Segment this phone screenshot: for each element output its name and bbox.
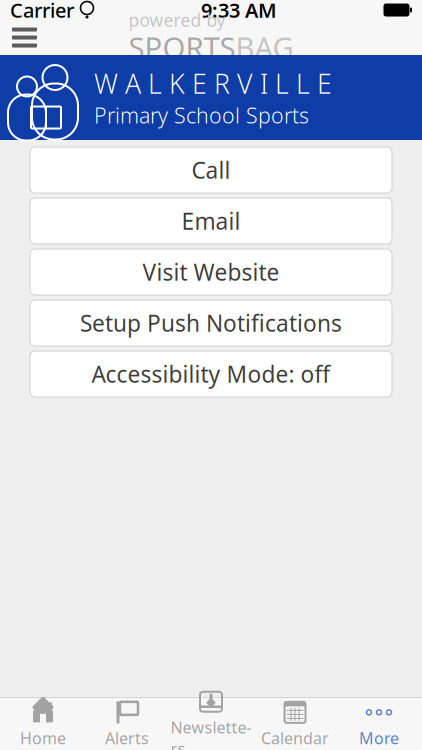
button[interactable]: Alerts xyxy=(85,698,169,750)
staticText: Email xyxy=(181,206,240,236)
staticText: More xyxy=(359,727,399,749)
button[interactable]: More xyxy=(337,698,421,750)
staticText: SPORTS xyxy=(128,27,235,66)
staticText: Visit Website xyxy=(142,257,279,287)
button[interactable]: Accessibility Mode: off xyxy=(30,351,392,397)
button[interactable]: Home xyxy=(1,698,85,750)
staticText: Calendar xyxy=(261,727,329,749)
button[interactable]: Call xyxy=(30,147,392,193)
button[interactable]: Visit Website xyxy=(30,249,392,295)
staticText: Alerts xyxy=(105,727,149,749)
button[interactable]: Email xyxy=(30,198,392,244)
button[interactable]: Menu xyxy=(0,19,49,55)
staticText: Primary School Sports xyxy=(94,101,309,129)
staticText: 9:33 AM xyxy=(201,0,277,23)
staticText: Home xyxy=(20,727,66,749)
staticText: W A L K E R V I L L E xyxy=(94,66,332,101)
staticText: powered by xyxy=(128,8,225,31)
button[interactable]: Setup Push Notifications xyxy=(30,300,392,346)
staticText: Newsletters xyxy=(170,717,251,750)
staticText: Carrier xyxy=(10,0,74,23)
staticText: BAG xyxy=(235,27,293,66)
staticText: Setup Push Notifications xyxy=(80,308,342,338)
button[interactable]: Calendar xyxy=(253,698,337,750)
staticText: Accessibility Mode: off xyxy=(91,359,330,389)
staticText: Call xyxy=(191,155,230,185)
button[interactable]: Newsletters xyxy=(169,698,253,750)
